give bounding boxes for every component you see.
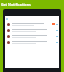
button[interactable] (5, 27, 59, 33)
button[interactable] (5, 39, 59, 45)
button[interactable]: Get Notifications (0, 0, 64, 9)
staticText: Get Notifications (1, 2, 31, 7)
button[interactable] (5, 21, 59, 27)
button[interactable] (5, 33, 59, 39)
button[interactable]: Menu (5, 16, 59, 21)
